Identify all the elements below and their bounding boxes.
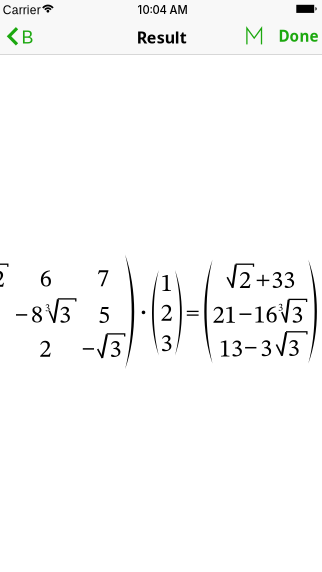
staticText: 3 <box>291 304 303 329</box>
staticText: 3 <box>278 303 283 313</box>
button[interactable]: MathPad <box>243 25 265 48</box>
staticText: Result <box>137 26 187 48</box>
staticText: 2 <box>239 269 251 294</box>
staticText: 2 <box>161 302 173 327</box>
staticText: 3 <box>260 337 272 362</box>
staticText: 8 <box>31 304 43 328</box>
staticText: 33 <box>271 269 295 294</box>
staticText: 3 <box>288 337 300 362</box>
staticText: 6 <box>40 268 52 292</box>
staticText: 7 <box>97 267 109 292</box>
staticText: 13 <box>219 338 243 362</box>
staticText: 3 <box>110 338 122 363</box>
staticText: 1 <box>161 272 173 297</box>
staticText: 10:04 AM <box>138 3 188 17</box>
staticText: 2 <box>39 338 51 362</box>
staticText: Carrier <box>3 3 41 17</box>
staticText: 2 <box>0 268 4 292</box>
staticText: 3 <box>45 303 50 314</box>
staticText: B <box>21 27 33 47</box>
staticText: 21 <box>213 304 237 328</box>
button[interactable]: Done <box>278 25 318 46</box>
staticText: 5 <box>98 304 110 329</box>
button[interactable]: Back <box>4 24 40 48</box>
staticText: 3 <box>161 333 173 357</box>
staticText: Done <box>278 25 318 46</box>
staticText: 16 <box>254 304 278 328</box>
staticText: 3 <box>59 304 71 328</box>
